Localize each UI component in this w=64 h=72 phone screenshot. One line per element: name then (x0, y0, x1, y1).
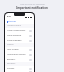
staticText: Lock Screen (7, 48, 19, 51)
staticText: Allow Notifications (7, 29, 26, 32)
staticText: Notification Center (7, 53, 26, 56)
staticText: OPTIONS (7, 62, 16, 65)
staticText: Time Sensitive (7, 34, 22, 37)
button[interactable]: Banners (5, 57, 34, 62)
button[interactable]: Allow Notifications (5, 28, 34, 33)
staticText: Important notification (16, 6, 48, 10)
staticText: Tap on top of Settings (20, 2, 45, 5)
button[interactable]: Time Sensitive (5, 33, 34, 38)
staticText: Settings (8, 20, 16, 23)
button[interactable]: Lock Screen (5, 47, 34, 52)
button[interactable]: Back to Settings (7, 20, 16, 23)
staticText: NOTIFICATIONS (7, 24, 22, 27)
staticText: Banners (7, 58, 16, 61)
staticText: Show Previews (7, 39, 22, 42)
button[interactable]: Notification Center (5, 52, 34, 57)
button[interactable]: Badges (5, 71, 34, 72)
staticText: Sounds (7, 67, 15, 70)
staticText: ALERTS (7, 43, 14, 46)
staticText: 9:41 (7, 15, 12, 18)
button[interactable]: Show Previews (5, 38, 34, 43)
button[interactable]: Sounds (5, 66, 34, 71)
